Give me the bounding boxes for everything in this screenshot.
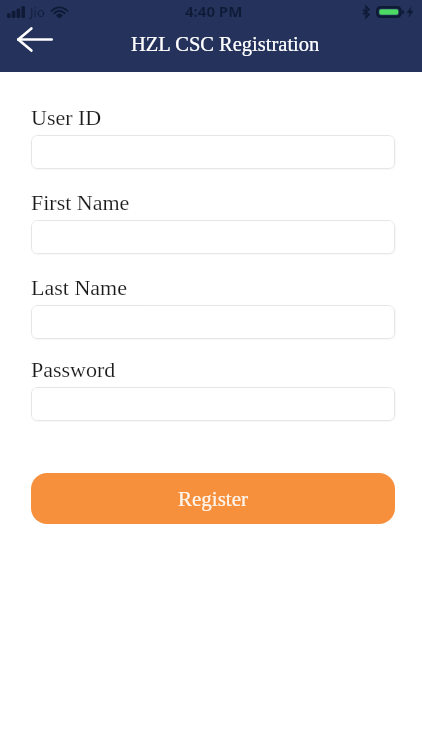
- staticText: User ID: [31, 105, 102, 129]
- button[interactable]: Back: [11, 24, 58, 55]
- button[interactable]: [31, 305, 395, 339]
- button[interactable]: [31, 387, 395, 421]
- button[interactable]: [31, 135, 395, 169]
- staticText: Last Name: [31, 275, 127, 299]
- staticText: Password: [31, 357, 116, 381]
- staticText: HZL CSC Registration: [131, 33, 320, 56]
- staticText: Register: [178, 487, 248, 510]
- button[interactable]: Register: [31, 473, 395, 524]
- staticText: First Name: [31, 190, 130, 214]
- staticText: 4:40 PM: [185, 1, 243, 21]
- staticText: Jio: [30, 3, 45, 21]
- button[interactable]: [31, 220, 395, 254]
